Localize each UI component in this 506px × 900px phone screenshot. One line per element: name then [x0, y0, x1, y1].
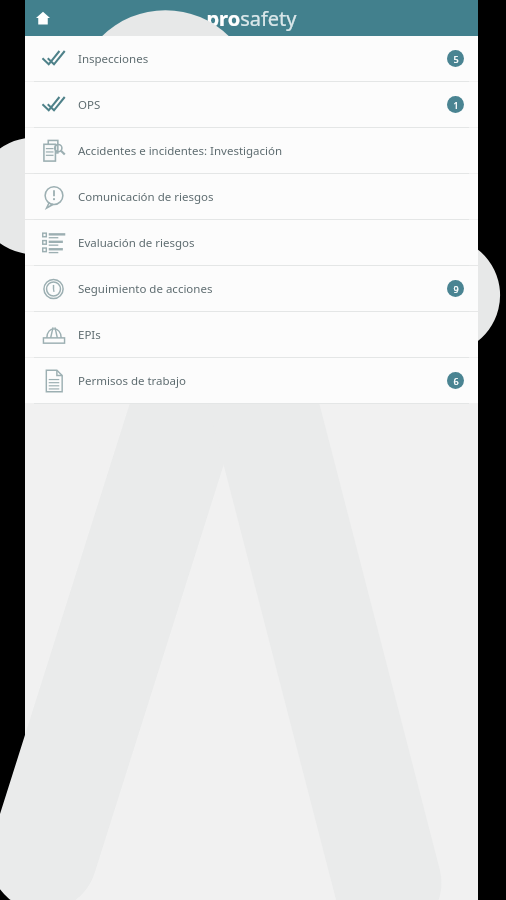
staticText: 5 — [453, 53, 459, 65]
button[interactable]: Seguimiento de acciones — [25, 266, 478, 311]
staticText: prosafety — [206, 5, 297, 32]
staticText: Inspecciones — [78, 51, 149, 67]
staticText: EPIs — [78, 327, 101, 343]
button[interactable]: OPS — [25, 82, 478, 127]
button[interactable]: Inspecciones — [25, 36, 478, 81]
button[interactable]: Comunicación de riesgos — [25, 174, 478, 219]
button[interactable]: EPIs — [25, 312, 478, 357]
staticText: Comunicación de riesgos — [78, 189, 214, 205]
staticText: Permisos de trabajo — [78, 373, 186, 389]
staticText: Accidentes e incidentes: Investigación — [78, 143, 283, 159]
staticText: OPS — [78, 97, 101, 113]
button[interactable]: Home — [25, 0, 61, 36]
button[interactable]: Permisos de trabajo — [25, 358, 478, 403]
button[interactable]: Accidentes e incidentes: Investigación — [25, 128, 478, 173]
staticText: 9 — [453, 283, 459, 295]
staticText: 1 — [453, 99, 459, 111]
staticText: 6 — [453, 375, 459, 387]
staticText: Seguimiento de acciones — [78, 281, 213, 297]
staticText: Evaluación de riesgos — [78, 235, 195, 251]
button[interactable]: Evaluación de riesgos — [25, 220, 478, 265]
